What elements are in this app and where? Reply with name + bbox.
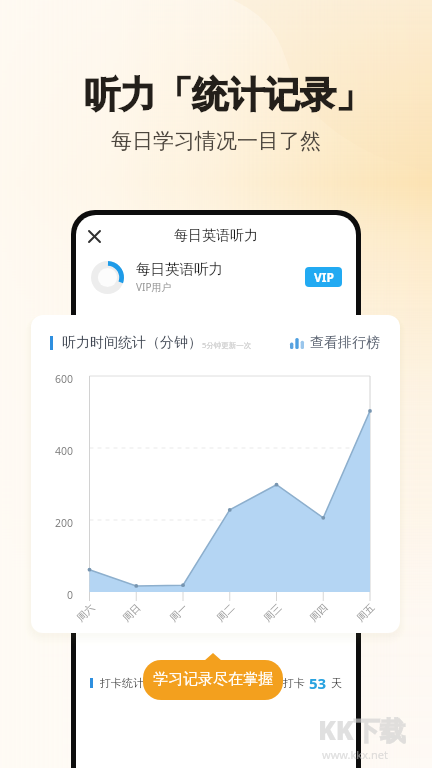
staticText: 查看排行榜 xyxy=(310,334,380,352)
staticText: 周三 xyxy=(261,601,284,624)
staticText: 听力「统计记录」 xyxy=(84,72,372,117)
button[interactable]: 查看排行榜 xyxy=(290,334,380,352)
staticText: 天 xyxy=(331,676,342,690)
staticText: 周日 xyxy=(120,601,143,624)
staticText: 学习记录尽在掌握 xyxy=(153,670,273,689)
staticText: VIP xyxy=(314,269,334,285)
button[interactable]: 学习记录尽在掌握 xyxy=(143,653,283,700)
staticText: 5分钟更新一次 xyxy=(202,340,252,350)
button[interactable]: VIP xyxy=(305,267,342,287)
staticText: 周五 xyxy=(354,601,377,624)
staticText: 打卡 xyxy=(283,676,305,690)
staticText: 0 xyxy=(67,588,74,602)
staticText: 每日英语听力 xyxy=(136,260,223,278)
staticText: 打卡统计 xyxy=(100,676,144,690)
staticText: KK下载 xyxy=(318,712,406,748)
staticText: 周六 xyxy=(74,601,97,624)
staticText: 600 xyxy=(55,372,74,386)
staticText: 200 xyxy=(55,516,74,530)
staticText: VIP用户 xyxy=(136,280,172,294)
staticText: www.kkx.net xyxy=(322,747,388,762)
staticText: 53 xyxy=(309,673,327,693)
staticText: 周一 xyxy=(167,601,190,624)
staticText: 周二 xyxy=(214,601,237,624)
button[interactable]: Close xyxy=(76,215,113,257)
staticText: 听力时间统计（分钟） xyxy=(62,334,202,352)
staticText: 每日学习情况一目了然 xyxy=(111,128,321,154)
staticText: 每日英语听力 xyxy=(174,227,258,245)
button[interactable]: 每日英语听力 xyxy=(76,257,356,297)
staticText: 周四 xyxy=(307,601,330,624)
staticText: 400 xyxy=(55,444,74,458)
